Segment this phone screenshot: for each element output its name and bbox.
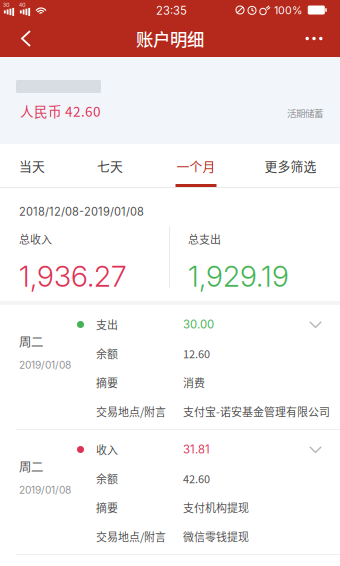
staticText: 一个月	[176, 156, 215, 175]
staticText: 更多筛选	[264, 156, 316, 175]
staticText: 消费	[183, 375, 205, 390]
button[interactable]: 一个月	[156, 144, 236, 188]
staticText: 3G	[3, 2, 10, 8]
staticText: 23:35	[156, 4, 187, 18]
staticText: 交易地点/附言	[96, 529, 166, 544]
staticText: 账户明细	[136, 26, 204, 51]
staticText: 摘要	[96, 375, 118, 390]
button[interactable]: 更多筛选	[241, 144, 340, 188]
button[interactable]: 周二	[0, 305, 340, 429]
staticText: 周二	[19, 332, 43, 350]
staticText: 总支出	[188, 231, 221, 247]
staticText: 1,936.27	[19, 259, 127, 294]
staticText: 活期储蓄	[287, 106, 323, 120]
staticText: 2019/01/08	[19, 484, 71, 496]
button[interactable]: 返回	[5, 17, 47, 59]
staticText: 1,929.19	[188, 259, 289, 294]
button[interactable]: 更多	[293, 17, 335, 59]
staticText: 支付宝-诺安基金管理有限公司	[183, 404, 330, 419]
staticText: 30.00	[183, 318, 214, 331]
staticText: 31.81	[183, 443, 210, 456]
staticText: 收入	[96, 442, 118, 457]
staticText: 交易地点/附言	[96, 404, 166, 419]
staticText: 摘要	[96, 500, 118, 515]
staticText: 总收入	[19, 231, 52, 247]
staticText: 余额	[96, 346, 118, 361]
staticText: 2018/12/08-2019/01/08	[19, 205, 144, 218]
staticText: 42.60	[183, 471, 210, 486]
staticText: 七天	[97, 156, 123, 175]
staticText: 4G	[19, 2, 26, 8]
staticText: 人民币 42.60	[20, 101, 101, 121]
staticText: 支出	[96, 317, 118, 332]
staticText: 支付机构提现	[183, 500, 249, 515]
button[interactable]: 周二	[0, 430, 340, 554]
button[interactable]: 当天	[0, 144, 64, 188]
staticText: 100%	[274, 4, 302, 17]
staticText: 周二	[19, 457, 43, 475]
staticText: 12.60	[183, 346, 210, 361]
staticText: 微信零钱提现	[183, 529, 249, 544]
staticText: 2019/01/08	[19, 359, 71, 371]
staticText: 当天	[19, 156, 45, 175]
staticText: 余额	[96, 471, 118, 486]
button[interactable]: 七天	[64, 144, 156, 188]
